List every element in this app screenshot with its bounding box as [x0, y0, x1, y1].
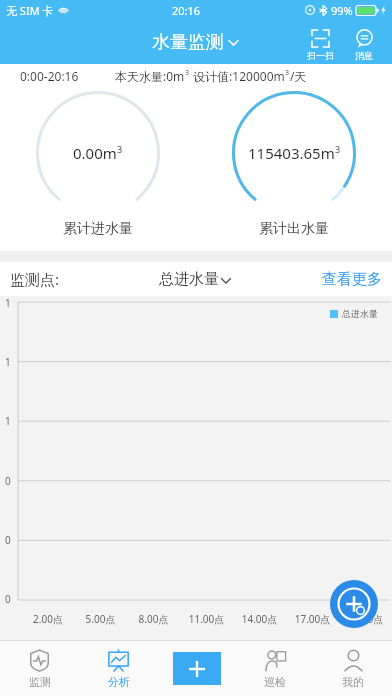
staticText: 消息 [355, 50, 373, 61]
staticText: 1 [5, 414, 11, 428]
staticText: /天 [290, 68, 307, 84]
button[interactable]: 水量监测 [152, 31, 240, 54]
staticText: 99% [331, 3, 353, 18]
button[interactable]: 新增 [158, 641, 236, 696]
staticText: 20:16 [172, 3, 201, 18]
staticText: 总进水量 [342, 308, 378, 319]
staticText: 累计进水量 [63, 220, 133, 238]
staticText: 无 SIM 卡 [6, 3, 54, 18]
staticText: 监测点: [10, 269, 60, 289]
button[interactable]: 我的 [314, 641, 392, 696]
staticText: 0 [5, 474, 11, 488]
staticText: 我的 [342, 675, 364, 689]
staticText: 本天水量:0m [115, 68, 185, 84]
button[interactable]: 扫一扫 [298, 20, 342, 64]
button[interactable]: 消息 [342, 20, 386, 64]
staticText: 1 [5, 296, 11, 310]
staticText: 17.00点 [286, 612, 339, 626]
staticText: 设计值:120000m [190, 68, 285, 84]
staticText: 监测 [29, 675, 51, 689]
button[interactable]: 添加 [330, 580, 378, 628]
staticText: 累计出水量 [259, 220, 329, 238]
button[interactable]: 巡检 [236, 641, 314, 696]
staticText: 1 [5, 355, 11, 369]
staticText: 3 [285, 68, 290, 78]
staticText: 0 [5, 592, 11, 606]
staticText: 2.00点 [22, 612, 74, 626]
staticText: 115403.65m [248, 143, 335, 163]
staticText: 3 [117, 143, 123, 155]
staticText: 0:00-20:16 [20, 68, 79, 84]
staticText: 11.00点 [180, 612, 233, 626]
staticText: 总进水量 [159, 270, 219, 289]
staticText: 巡检 [264, 675, 286, 689]
button[interactable]: 查看更多 [322, 270, 382, 289]
staticText: 20.00点 [339, 612, 392, 626]
staticText: 0 [5, 533, 11, 547]
staticText: 0.00m [73, 143, 117, 163]
staticText: 5.00点 [74, 612, 127, 626]
button[interactable]: 分析 [79, 641, 158, 696]
staticText: 8.00点 [127, 612, 180, 626]
button[interactable]: 总进水量 [159, 270, 233, 289]
staticText: 水量监测 [152, 31, 224, 54]
staticText: 3 [335, 143, 341, 155]
staticText: 分析 [108, 675, 130, 689]
button[interactable]: 监测 [0, 641, 79, 696]
staticText: 14.00点 [233, 612, 286, 626]
staticText: 3 [185, 68, 190, 78]
staticText: 扫一扫 [307, 50, 334, 61]
